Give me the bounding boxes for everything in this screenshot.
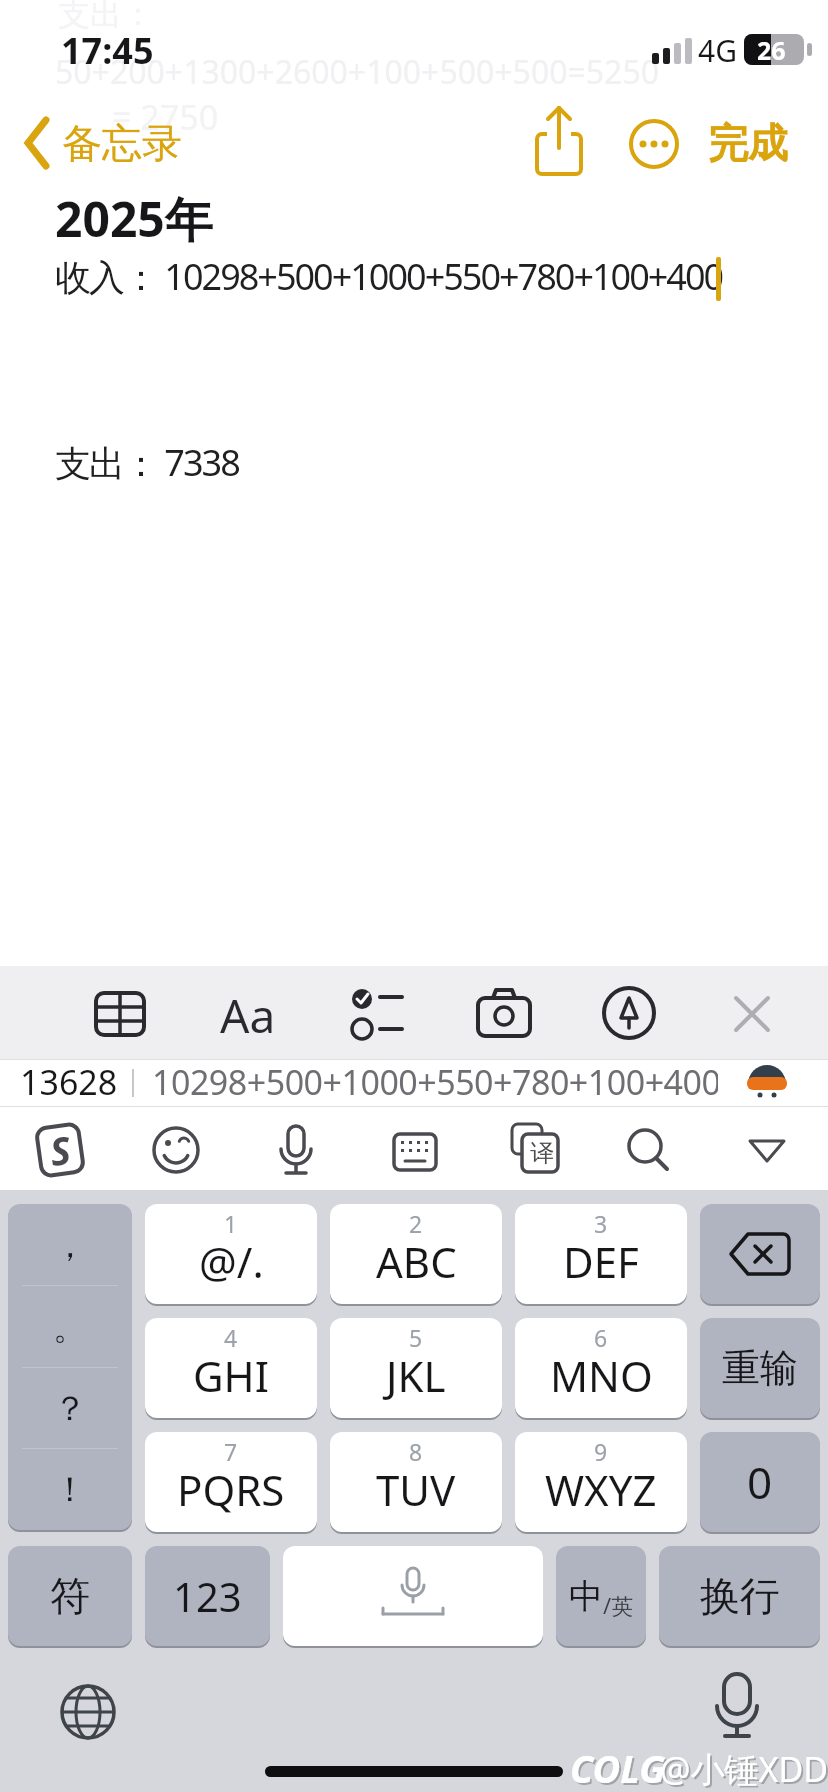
staticText: 重输 (722, 1344, 798, 1392)
staticText: 50+200+1300+2600+100+500+500=5250 (55, 50, 660, 94)
button[interactable]: 完成 (708, 118, 788, 168)
staticText: 9 (594, 1436, 608, 1467)
button[interactable]: 4 (145, 1318, 317, 1418)
button[interactable] (272, 1122, 320, 1178)
staticText: @小锤XDD (662, 1748, 828, 1792)
staticText: 1 (224, 1208, 238, 1239)
staticText: 26 (757, 33, 786, 67)
staticText: @/. (199, 1233, 264, 1290)
staticText: 10298+500+1000+550+780+100+400 (152, 1059, 718, 1105)
staticText: = 2750 (112, 94, 219, 140)
staticText: 17:45 (61, 26, 154, 75)
button[interactable] (746, 1063, 788, 1105)
staticText: 支出： (58, 0, 154, 34)
staticText: ， (53, 1224, 87, 1267)
button[interactable]: 1 (145, 1204, 317, 1304)
button[interactable]: 换行 (659, 1546, 820, 1646)
button[interactable]: 8 (330, 1432, 502, 1532)
staticText: 5 (409, 1322, 423, 1353)
staticText: ！ (53, 1468, 87, 1511)
button[interactable] (392, 1128, 438, 1174)
button[interactable] (152, 1126, 200, 1174)
button[interactable]: 中 (556, 1546, 646, 1646)
staticText: 13628 (20, 1059, 118, 1105)
staticText: 4G (698, 30, 737, 71)
staticText: COLG (572, 1744, 668, 1792)
button[interactable] (744, 1132, 792, 1172)
button[interactable] (58, 1682, 118, 1742)
button[interactable]: 9 (515, 1432, 687, 1532)
button[interactable]: 译 (508, 1122, 560, 1176)
staticText: 备忘录 (62, 118, 182, 168)
button[interactable] (530, 104, 588, 180)
staticText: @小锤XDD (660, 1746, 828, 1792)
button[interactable] (90, 987, 150, 1041)
button[interactable]: 符 (8, 1546, 132, 1646)
staticText: 0 (747, 1452, 773, 1512)
staticText: 8 (409, 1436, 423, 1467)
staticText: /英 (603, 1590, 634, 1620)
staticText: 换行 (700, 1571, 780, 1621)
button[interactable]: 13628 (20, 1059, 118, 1105)
staticText: WXYZ (545, 1461, 657, 1518)
staticText: JKL (386, 1347, 446, 1404)
staticText: ？ (53, 1387, 87, 1430)
button[interactable] (8, 1204, 132, 1530)
staticText: COLG (570, 1742, 666, 1792)
staticText: 2 (409, 1208, 423, 1239)
staticText: MNO (550, 1347, 653, 1404)
button[interactable]: 6 (515, 1318, 687, 1418)
button[interactable]: 123 (145, 1546, 270, 1646)
staticText: GHI (193, 1347, 269, 1404)
button[interactable] (474, 984, 534, 1042)
button[interactable] (700, 1204, 820, 1304)
staticText: TUV (376, 1461, 456, 1518)
button[interactable]: ！ (8, 1448, 132, 1530)
staticText: 译 (530, 1138, 554, 1168)
button[interactable]: ， (8, 1204, 132, 1286)
staticText: 123 (173, 1569, 242, 1623)
staticText: Aa (220, 984, 276, 1040)
staticText: 支出： 7338 (55, 438, 239, 487)
staticText: DEF (563, 1233, 639, 1290)
button[interactable]: 10298+500+1000+550+780+100+400 (152, 1059, 718, 1105)
staticText: 。 (53, 1306, 87, 1349)
staticText: 7 (224, 1436, 238, 1467)
staticText: 完成 (708, 118, 788, 168)
staticText: 6 (594, 1322, 608, 1353)
staticText: 中 (569, 1575, 603, 1618)
staticText: 2025年 (55, 186, 213, 252)
button[interactable]: 7 (145, 1432, 317, 1532)
staticText: 符 (50, 1571, 90, 1621)
staticText: S (46, 1123, 74, 1177)
button[interactable] (710, 1672, 766, 1742)
button[interactable]: ？ (8, 1367, 132, 1449)
button[interactable]: 0 (700, 1432, 820, 1532)
button[interactable]: 重输 (700, 1318, 820, 1418)
staticText: PQRS (177, 1461, 285, 1518)
button[interactable]: S (34, 1122, 86, 1178)
button[interactable] (283, 1546, 543, 1646)
button[interactable]: Aa (220, 984, 280, 1040)
staticText: 4 (224, 1322, 238, 1353)
button[interactable]: 。 (8, 1286, 132, 1368)
button[interactable] (730, 992, 774, 1036)
staticText: ABC (376, 1233, 457, 1290)
button[interactable] (624, 1126, 674, 1176)
button[interactable]: 5 (330, 1318, 502, 1418)
button[interactable] (346, 984, 408, 1044)
staticText: 3 (594, 1208, 608, 1239)
button[interactable]: 备忘录 (14, 110, 184, 174)
button[interactable]: 3 (515, 1204, 687, 1304)
button[interactable]: 2 (330, 1204, 502, 1304)
button[interactable] (628, 118, 680, 170)
button[interactable] (602, 986, 658, 1042)
staticText: 收入： 10298+500+1000+550+780+100+400 (55, 252, 723, 301)
